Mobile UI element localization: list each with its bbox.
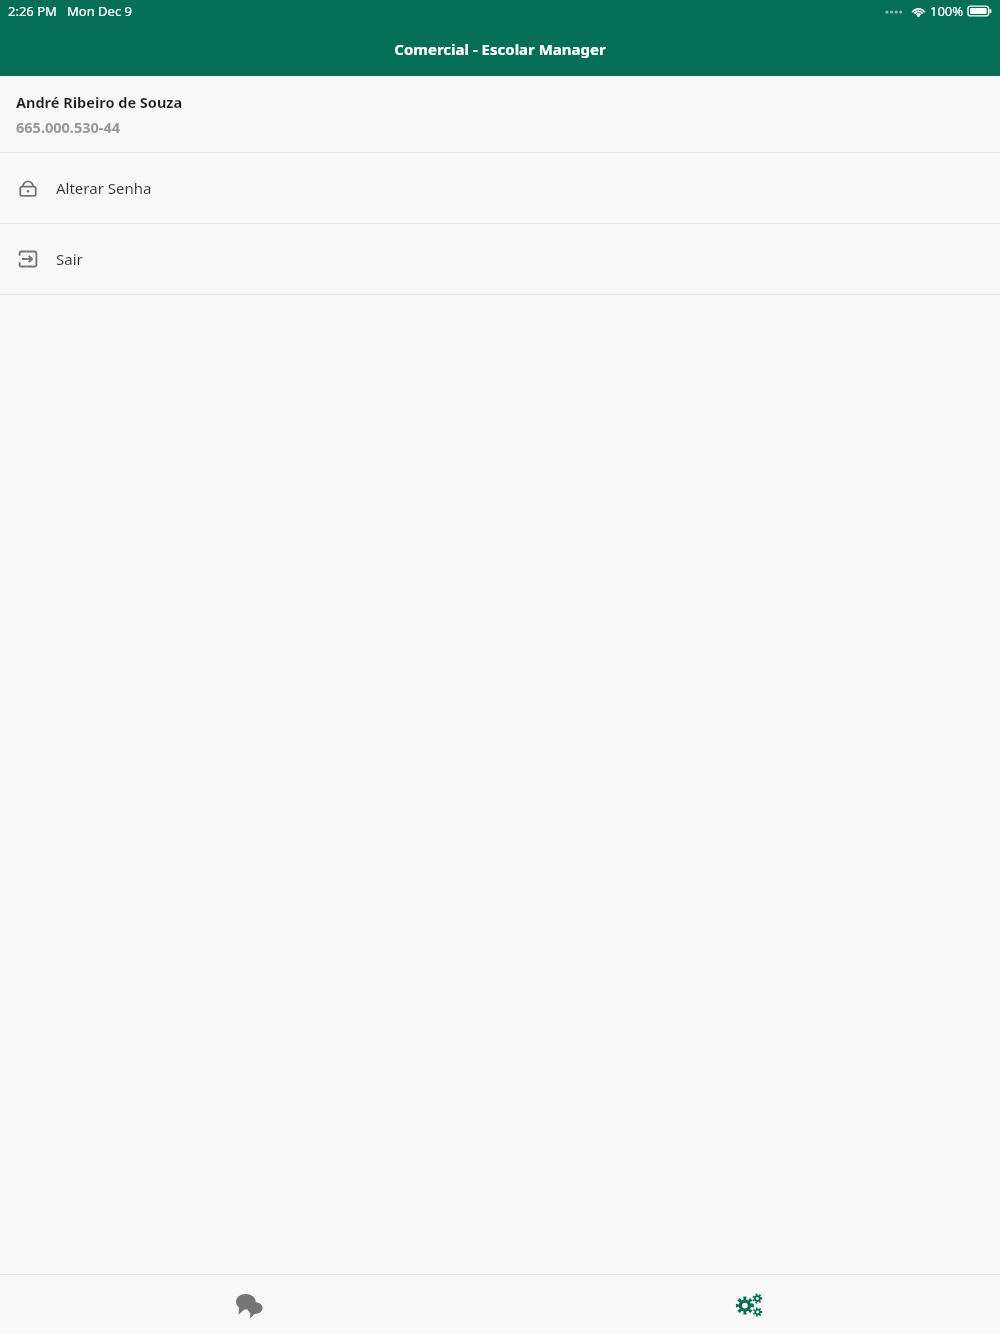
staticText: 2:26 PM [8, 2, 57, 20]
staticText: Mon Dec 9 [67, 2, 132, 20]
staticText: 100% [930, 2, 964, 20]
button[interactable]: Sair [0, 224, 1000, 294]
button[interactable]: Configurações [500, 1275, 1000, 1334]
staticText: Alterar Senha [56, 178, 152, 198]
staticText: 665.000.530-44 [16, 117, 121, 137]
staticText: Comercial - Escolar Manager [394, 39, 606, 59]
staticText: André Ribeiro de Souza [16, 92, 183, 112]
button[interactable]: Alterar Senha [0, 153, 1000, 223]
staticText: Sair [56, 249, 83, 269]
button[interactable]: Mensagens [0, 1275, 500, 1334]
